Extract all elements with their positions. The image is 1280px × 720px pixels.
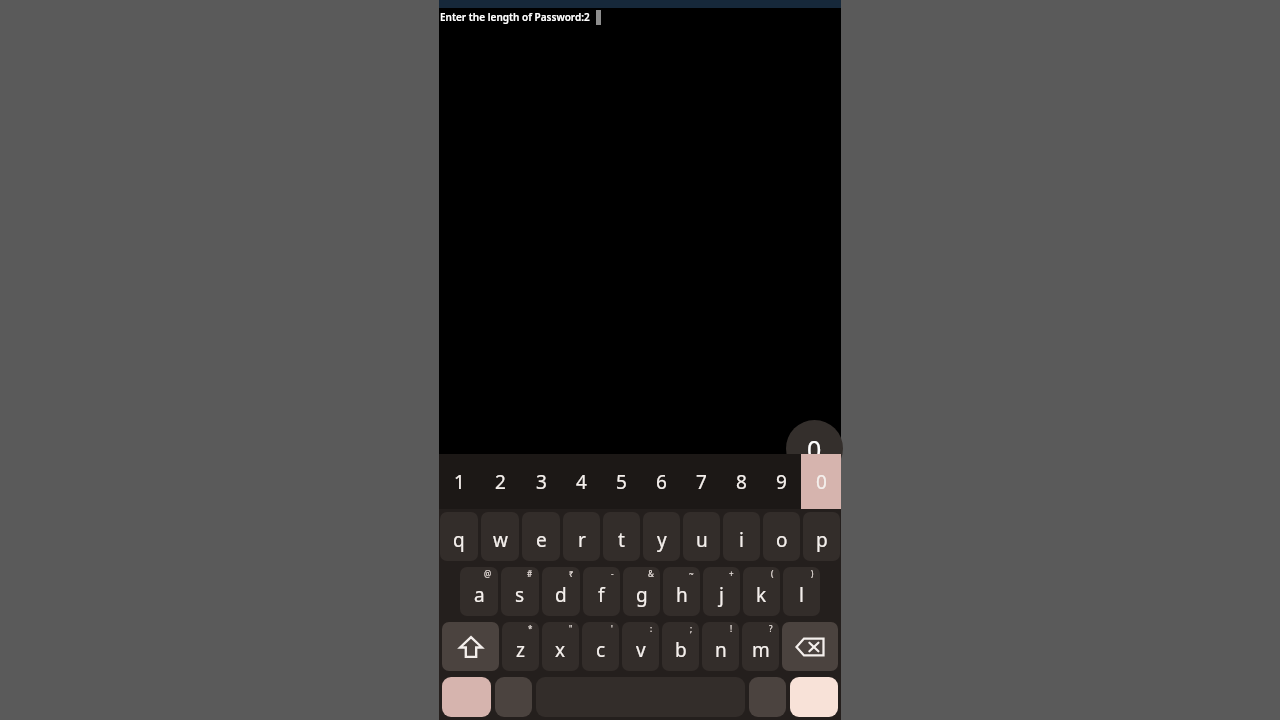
staticText: r xyxy=(578,527,586,553)
staticText: u xyxy=(696,527,708,553)
staticText: t xyxy=(618,527,625,553)
button[interactable]: Period xyxy=(749,677,786,717)
staticText: - xyxy=(611,568,614,579)
button[interactable]: 5 xyxy=(601,454,641,509)
button[interactable]: 6 xyxy=(641,454,681,509)
staticText: ) xyxy=(811,568,814,579)
button[interactable]: 2 xyxy=(480,454,521,509)
button[interactable]: Enter xyxy=(790,677,838,717)
button[interactable]: c xyxy=(582,622,619,671)
button[interactable]: w xyxy=(481,512,519,561)
button[interactable]: n xyxy=(702,622,739,671)
button[interactable]: q xyxy=(440,512,478,561)
staticText: @ xyxy=(484,568,492,579)
staticText: z xyxy=(516,637,525,663)
staticText: c xyxy=(596,637,606,663)
staticText: a xyxy=(474,582,485,608)
button[interactable]: s xyxy=(501,567,539,616)
staticText: 3 xyxy=(536,469,547,495)
staticText: m xyxy=(752,637,770,663)
staticText: & xyxy=(648,568,654,579)
staticText: 7 xyxy=(696,469,707,495)
staticText: 6 xyxy=(656,469,667,495)
button[interactable]: m xyxy=(742,622,779,671)
button[interactable]: h xyxy=(663,567,700,616)
button[interactable]: 8 xyxy=(721,454,761,509)
button[interactable]: 4 xyxy=(561,454,601,509)
staticText: y xyxy=(657,527,667,553)
staticText: ; xyxy=(690,623,693,634)
button[interactable]: y xyxy=(643,512,680,561)
button[interactable]: 9 xyxy=(761,454,801,509)
staticText: 8 xyxy=(736,469,747,495)
button[interactable]: Symbols xyxy=(442,677,491,717)
button[interactable]: b xyxy=(662,622,699,671)
button[interactable]: p xyxy=(803,512,840,561)
staticText: l xyxy=(799,582,804,608)
button[interactable]: g xyxy=(623,567,660,616)
button[interactable]: v xyxy=(622,622,659,671)
staticText: d xyxy=(555,582,567,608)
staticText: j xyxy=(719,582,724,608)
button[interactable]: t xyxy=(603,512,640,561)
button[interactable]: Backspace xyxy=(782,622,838,671)
staticText: 2 xyxy=(495,469,506,495)
staticText: o xyxy=(776,527,788,553)
staticText: v xyxy=(636,637,646,663)
button[interactable]: r xyxy=(563,512,600,561)
button[interactable]: 7 xyxy=(681,454,721,509)
button[interactable]: a xyxy=(460,567,498,616)
button[interactable]: d xyxy=(542,567,580,616)
button[interactable]: u xyxy=(683,512,720,561)
staticText: k xyxy=(756,582,767,608)
staticText: h xyxy=(676,582,688,608)
staticText: q xyxy=(453,527,465,553)
staticText: n xyxy=(715,637,727,663)
staticText: 4 xyxy=(576,469,587,495)
staticText: Enter the length of Password:2 xyxy=(440,10,590,24)
staticText: ' xyxy=(611,623,613,634)
staticText: s xyxy=(515,582,525,608)
staticText: 5 xyxy=(616,469,627,495)
staticText: * xyxy=(528,623,533,634)
staticText: 0 xyxy=(807,432,822,466)
button[interactable]: 1 xyxy=(439,454,480,509)
staticText: i xyxy=(739,527,744,553)
staticText: ! xyxy=(730,623,733,634)
button[interactable]: f xyxy=(583,567,620,616)
button[interactable]: j xyxy=(703,567,740,616)
staticText: : xyxy=(650,623,653,634)
staticText: p xyxy=(816,527,828,553)
staticText: ~ xyxy=(689,568,694,579)
staticText: ( xyxy=(771,568,774,579)
button[interactable]: o xyxy=(763,512,800,561)
button[interactable]: l xyxy=(783,567,820,616)
button[interactable]: z xyxy=(502,622,539,671)
button[interactable]: Shift xyxy=(442,622,499,671)
staticText: " xyxy=(569,623,573,634)
staticText: x xyxy=(555,637,566,663)
button[interactable]: Comma xyxy=(495,677,532,717)
staticText: # xyxy=(527,568,533,579)
staticText: 9 xyxy=(776,469,787,495)
staticText: w xyxy=(493,527,508,553)
button[interactable]: i xyxy=(723,512,760,561)
staticText: e xyxy=(536,527,547,553)
staticText: 1 xyxy=(454,469,465,495)
staticText: + xyxy=(729,568,734,579)
staticText: b xyxy=(675,637,687,663)
button[interactable]: 3 xyxy=(521,454,561,509)
staticText: g xyxy=(636,582,648,608)
staticText: ₹ xyxy=(569,568,574,579)
button[interactable]: x xyxy=(542,622,579,671)
button[interactable]: k xyxy=(743,567,780,616)
staticText: 0 xyxy=(816,469,827,495)
staticText: ? xyxy=(769,623,773,634)
button[interactable]: e xyxy=(522,512,560,561)
staticText: f xyxy=(598,582,605,608)
button[interactable]: 0 xyxy=(801,454,841,509)
